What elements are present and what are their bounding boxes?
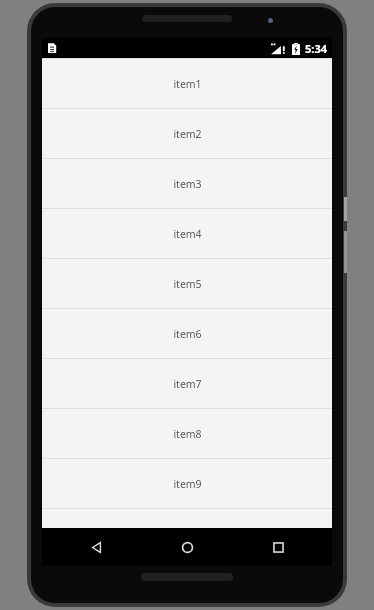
button[interactable]: item9 [42, 459, 332, 509]
staticText: item6 [173, 327, 202, 341]
staticText: item4 [173, 227, 202, 241]
staticText: item1 [173, 77, 202, 91]
button[interactable]: Back [59, 528, 133, 566]
button[interactable]: item5 [42, 259, 332, 309]
staticText: item2 [173, 127, 202, 141]
staticText: item3 [173, 177, 202, 191]
button[interactable]: item1 [42, 59, 332, 109]
button[interactable]: item2 [42, 109, 332, 159]
button[interactable]: Recent apps [241, 528, 315, 566]
button[interactable]: item7 [42, 359, 332, 409]
staticText: item9 [173, 477, 202, 491]
staticText: item7 [173, 377, 202, 391]
button[interactable]: item6 [42, 309, 332, 359]
staticText: 5:34 [305, 41, 327, 56]
staticText: item8 [173, 427, 202, 441]
button[interactable]: item8 [42, 409, 332, 459]
staticText: item5 [173, 277, 202, 291]
button[interactable]: item4 [42, 209, 332, 259]
button[interactable]: Home [150, 528, 224, 566]
button[interactable]: item3 [42, 159, 332, 209]
